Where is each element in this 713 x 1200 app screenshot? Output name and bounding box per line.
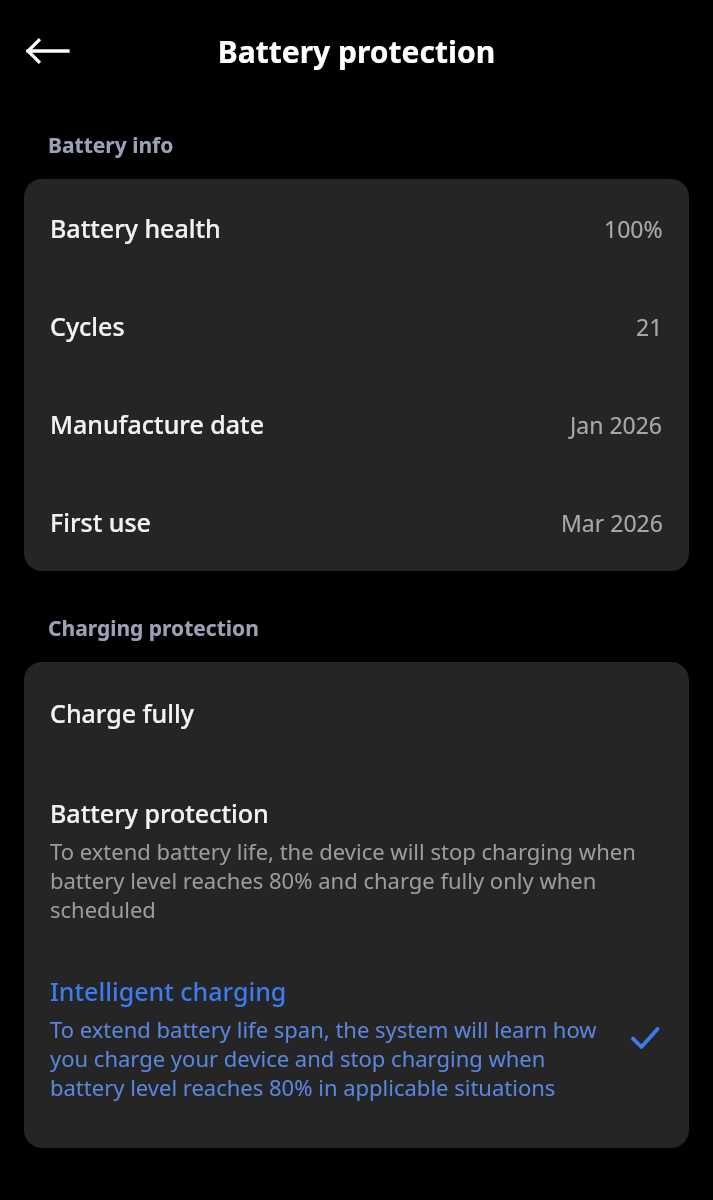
button[interactable]: Manufacture date: [24, 375, 689, 473]
staticText: Charging protection: [48, 614, 259, 643]
staticText: 21: [636, 311, 663, 342]
button[interactable]: Battery protection: [24, 748, 689, 934]
staticText: Jan 2026: [570, 409, 663, 440]
staticText: 100%: [604, 213, 663, 244]
staticText: Manufacture date: [50, 407, 265, 441]
staticText: Battery health: [50, 211, 221, 245]
button[interactable]: Intelligent charging: [24, 934, 689, 1148]
staticText: First use: [50, 505, 151, 539]
staticText: Battery protection: [0, 31, 713, 72]
button[interactable]: First use: [24, 473, 689, 571]
button[interactable]: Battery health: [24, 179, 689, 277]
button[interactable]: Cycles: [24, 277, 689, 375]
staticText: Battery protection: [50, 796, 269, 830]
staticText: Battery info: [48, 131, 174, 160]
button[interactable]: Charge fully: [24, 662, 689, 748]
staticText: Mar 2026: [561, 507, 663, 538]
staticText: Cycles: [50, 309, 125, 343]
staticText: Charge fully: [50, 696, 194, 730]
staticText: Intelligent charging: [50, 974, 287, 1008]
button[interactable]: Back: [26, 29, 70, 73]
staticText: To extend battery life, the device will …: [50, 836, 663, 924]
staticText: To extend battery life span, the system …: [50, 1014, 615, 1102]
